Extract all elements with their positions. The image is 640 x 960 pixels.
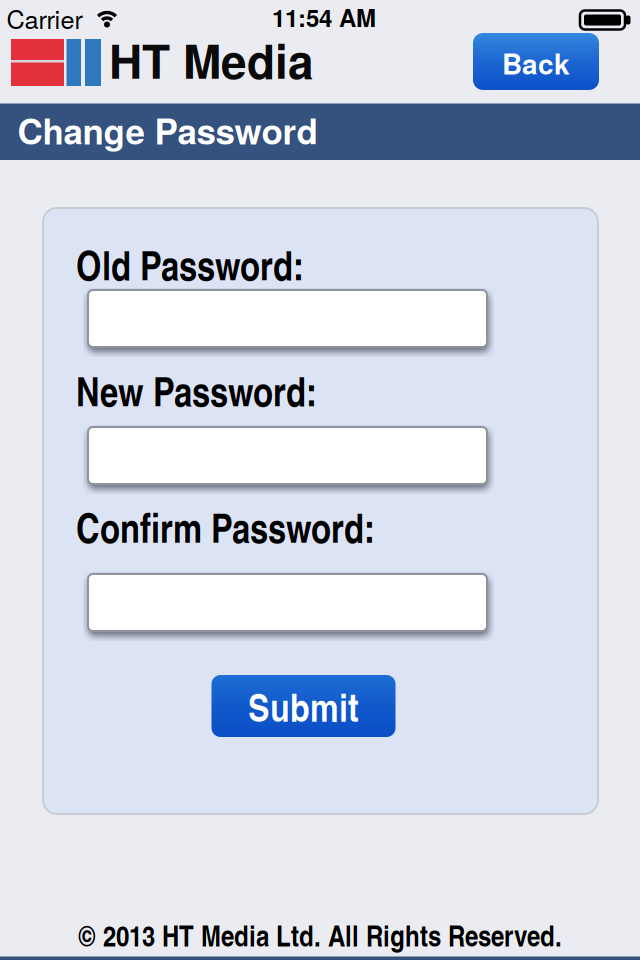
button[interactable]: Submit bbox=[211, 675, 395, 737]
staticText: 11:54 AM bbox=[272, 0, 376, 34]
staticText: Carrier bbox=[6, 0, 82, 36]
staticText: Confirm Password: bbox=[76, 498, 375, 555]
staticText: Old Password: bbox=[76, 236, 304, 292]
staticText: © 2013 HT Media Ltd. All Rights Reserved… bbox=[78, 914, 562, 955]
staticText: HT Media bbox=[109, 27, 314, 93]
staticText: New Password: bbox=[76, 362, 317, 418]
staticText: Submit bbox=[248, 678, 359, 734]
staticText: Back bbox=[502, 43, 570, 83]
staticText: Change Password bbox=[17, 105, 317, 155]
button[interactable]: Back bbox=[473, 33, 599, 90]
